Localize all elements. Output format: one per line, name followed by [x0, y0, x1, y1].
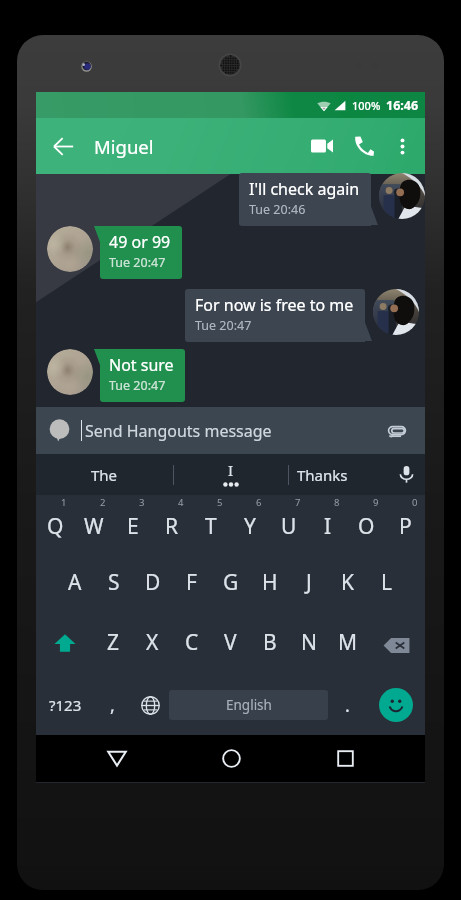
- button[interactable]: English: [169, 690, 328, 720]
- staticText: S: [108, 568, 120, 597]
- button[interactable]: 9: [347, 495, 386, 555]
- button[interactable]: G: [211, 555, 250, 615]
- button[interactable]: Change language: [131, 675, 169, 735]
- button[interactable]: 8: [308, 495, 347, 555]
- button[interactable]: .: [328, 675, 366, 735]
- button[interactable]: Shift: [36, 615, 94, 675]
- button[interactable]: D: [133, 555, 172, 615]
- staticText: 100%: [352, 98, 381, 113]
- staticText: I'll check again: [249, 178, 360, 200]
- staticText: F: [186, 568, 197, 597]
- staticText: 16:46: [386, 97, 419, 114]
- button[interactable]: B: [250, 615, 289, 675]
- button[interactable]: S: [94, 555, 133, 615]
- button[interactable]: Voice input: [388, 454, 425, 495]
- button[interactable]: 6: [230, 495, 269, 555]
- button[interactable]: 7: [269, 495, 308, 555]
- staticText: M: [338, 628, 358, 657]
- staticText: .: [345, 693, 350, 718]
- staticText: For now is free to me: [195, 294, 354, 316]
- button[interactable]: The: [36, 454, 173, 495]
- staticText: E: [127, 512, 139, 541]
- button[interactable]: ?123: [36, 675, 94, 735]
- button[interactable]: Call: [343, 125, 385, 167]
- staticText: X: [146, 628, 159, 657]
- staticText: English: [226, 696, 272, 714]
- staticText: 49 or 99: [109, 231, 171, 253]
- staticText: 5: [217, 496, 223, 509]
- staticText: W: [84, 512, 104, 541]
- button[interactable]: Attach: [382, 416, 412, 446]
- button[interactable]: X: [133, 615, 172, 675]
- button[interactable]: 0: [386, 495, 425, 555]
- staticText: 0: [412, 496, 418, 509]
- staticText: 4: [178, 496, 184, 509]
- staticText: 7: [295, 496, 301, 509]
- staticText: I: [324, 512, 332, 541]
- staticText: G: [223, 568, 239, 597]
- staticText: K: [341, 568, 354, 597]
- staticText: ,: [110, 693, 115, 718]
- button[interactable]: 49 or 99: [100, 226, 182, 279]
- staticText: D: [145, 568, 161, 597]
- button[interactable]: Home: [203, 735, 259, 782]
- button[interactable]: 3: [113, 495, 152, 555]
- button[interactable]: J: [289, 555, 328, 615]
- staticText: U: [281, 512, 297, 541]
- button[interactable]: I: [174, 454, 288, 495]
- button[interactable]: Back: [44, 127, 82, 165]
- button[interactable]: Backspace: [367, 615, 425, 675]
- button[interactable]: 2: [74, 495, 113, 555]
- button[interactable]: V: [211, 615, 250, 675]
- staticText: L: [381, 568, 393, 597]
- staticText: Send Hangouts message: [85, 420, 272, 442]
- staticText: Thanks: [297, 465, 348, 485]
- button[interactable]: N: [289, 615, 328, 675]
- staticText: P: [399, 512, 412, 541]
- staticText: Tue 20:47: [109, 254, 166, 271]
- staticText: 6: [256, 496, 262, 509]
- button[interactable]: ,: [94, 675, 131, 735]
- staticText: Z: [107, 628, 120, 657]
- button[interactable]: Thanks: [289, 454, 388, 495]
- button[interactable]: Not sure: [100, 349, 185, 402]
- staticText: Q: [47, 512, 64, 541]
- staticText: A: [68, 568, 82, 597]
- button[interactable]: M: [328, 615, 367, 675]
- button[interactable]: Z: [94, 615, 133, 675]
- staticText: The: [91, 465, 118, 485]
- button[interactable]: 1: [36, 495, 74, 555]
- button[interactable]: A: [55, 555, 94, 615]
- button[interactable]: K: [328, 555, 367, 615]
- button[interactable]: Emoji: [366, 675, 425, 735]
- button[interactable]: H: [250, 555, 289, 615]
- staticText: R: [165, 512, 179, 541]
- staticText: Tue 20:47: [195, 317, 252, 334]
- button[interactable]: L: [367, 555, 406, 615]
- button[interactable]: 4: [152, 495, 191, 555]
- staticText: Tue 20:47: [109, 377, 166, 394]
- button[interactable]: More options: [385, 129, 419, 163]
- button[interactable]: Recents: [317, 735, 373, 782]
- staticText: 2: [100, 496, 106, 509]
- button[interactable]: C: [172, 615, 211, 675]
- staticText: Tue 20:46: [249, 201, 306, 218]
- staticText: O: [358, 512, 375, 541]
- button[interactable]: I'll check again: [239, 173, 371, 226]
- staticText: B: [263, 628, 277, 657]
- staticText: J: [306, 568, 312, 597]
- staticText: 8: [334, 496, 340, 509]
- staticText: Not sure: [109, 354, 174, 376]
- staticText: I: [228, 460, 234, 480]
- staticText: T: [205, 512, 217, 541]
- staticText: H: [262, 568, 278, 597]
- button[interactable]: 5: [191, 495, 230, 555]
- button[interactable]: Video call: [301, 125, 343, 167]
- staticText: Miguel: [94, 134, 154, 159]
- button[interactable]: F: [172, 555, 211, 615]
- staticText: ?123: [49, 695, 82, 715]
- button[interactable]: For now is free to me: [185, 289, 365, 342]
- button[interactable]: Back: [89, 735, 145, 782]
- staticText: N: [301, 628, 317, 657]
- staticText: V: [224, 628, 237, 657]
